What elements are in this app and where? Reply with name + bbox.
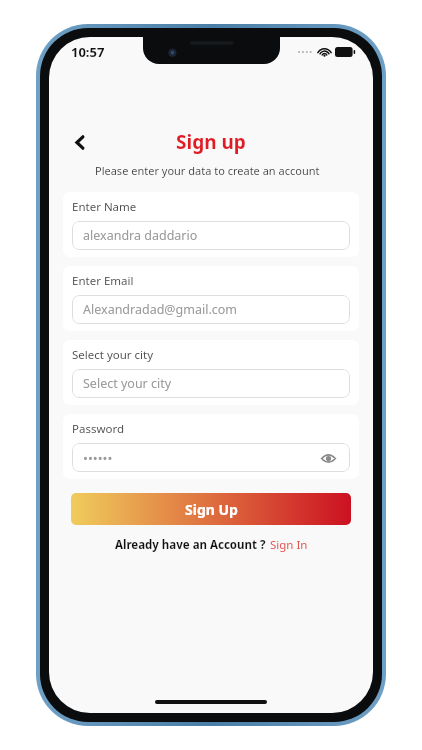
button[interactable]: Sign Up [71, 493, 351, 525]
button[interactable]: Alexandradad@gmail.com [72, 295, 350, 324]
staticText: Sign In [270, 537, 308, 553]
staticText: Please enter your data to create an acco… [95, 163, 373, 178]
staticText: Already have an Account ? [115, 537, 266, 553]
button[interactable]: Show password [317, 447, 339, 469]
staticText: Enter Name [72, 199, 137, 215]
staticText: Sign up [176, 129, 246, 155]
button[interactable]: •••••• [72, 443, 350, 472]
staticText: Select your city [83, 375, 172, 392]
staticText: Alexandradad@gmail.com [83, 301, 238, 318]
button[interactable]: Select your city [72, 369, 350, 398]
button[interactable]: alexandra daddario [72, 221, 350, 250]
staticText: Select your city [72, 347, 154, 363]
staticText: Password [72, 421, 125, 437]
staticText: Sign Up [185, 500, 238, 519]
staticText: Enter Email [72, 273, 134, 289]
staticText: •••••• [83, 449, 113, 467]
staticText: 10:57 [71, 43, 105, 61]
button[interactable]: Sign In [270, 537, 308, 553]
button[interactable]: Back [63, 125, 97, 159]
staticText: alexandra daddario [83, 227, 198, 244]
